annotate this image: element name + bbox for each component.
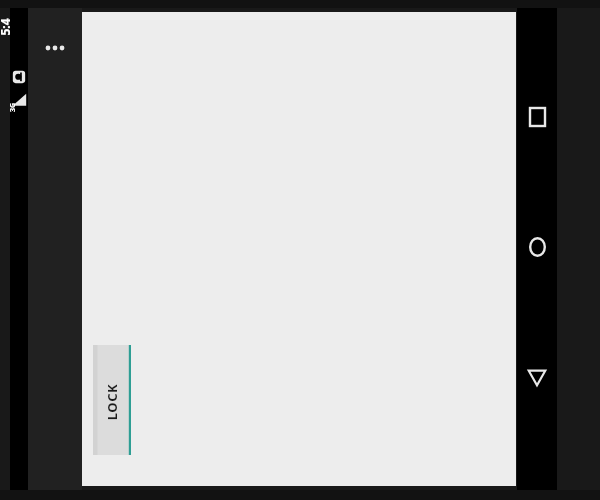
button[interactable]: More options — [37, 30, 73, 66]
button[interactable]: Back — [519, 359, 555, 395]
button[interactable]: Recent apps — [519, 99, 555, 135]
staticText: 5:46 — [0, 18, 15, 36]
button[interactable]: Home — [519, 229, 555, 265]
staticText: LOCKED — [103, 383, 121, 421]
button[interactable]: LOCKED — [93, 345, 131, 455]
staticText: 3G — [8, 102, 18, 112]
